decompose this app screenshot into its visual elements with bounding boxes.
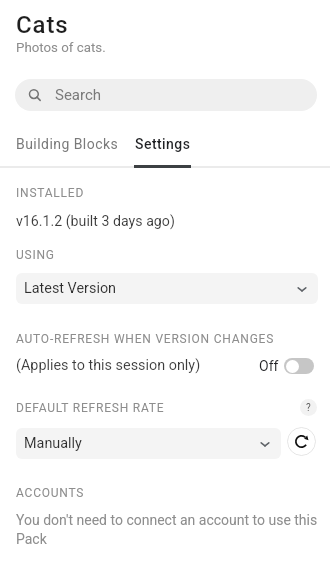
staticText: (Applies to this session only) — [16, 357, 201, 374]
staticText: USING — [16, 248, 55, 262]
button[interactable]: Help — [300, 399, 317, 416]
staticText: Cats — [16, 11, 69, 39]
button[interactable]: Manually — [16, 428, 281, 459]
staticText: ? — [306, 402, 311, 414]
button[interactable]: Off — [259, 358, 314, 374]
staticText: Building Blocks — [16, 136, 119, 152]
button[interactable]: Building Blocks — [0, 131, 127, 162]
staticText: Settings — [135, 136, 191, 152]
staticText: Manually — [24, 435, 82, 452]
staticText: You don't need to connect an account to … — [16, 512, 318, 547]
button[interactable]: Latest Version — [16, 273, 318, 304]
staticText: Search — [55, 86, 102, 104]
staticText: Off — [259, 358, 279, 374]
staticText: DEFAULT REFRESH RATE — [16, 401, 165, 415]
staticText: v16.1.2 (built 3 days ago) — [16, 213, 175, 230]
staticText: INSTALLED — [16, 186, 85, 200]
staticText: Photos of cats. — [16, 40, 106, 56]
button[interactable]: Settings — [127, 131, 199, 162]
staticText: Latest Version — [24, 280, 117, 297]
staticText: ACCOUNTS — [16, 486, 85, 500]
button[interactable]: Refresh — [287, 427, 316, 456]
button[interactable]: Search — [15, 79, 317, 111]
staticText: AUTO-REFRESH WHEN VERSION CHANGES — [16, 332, 275, 346]
